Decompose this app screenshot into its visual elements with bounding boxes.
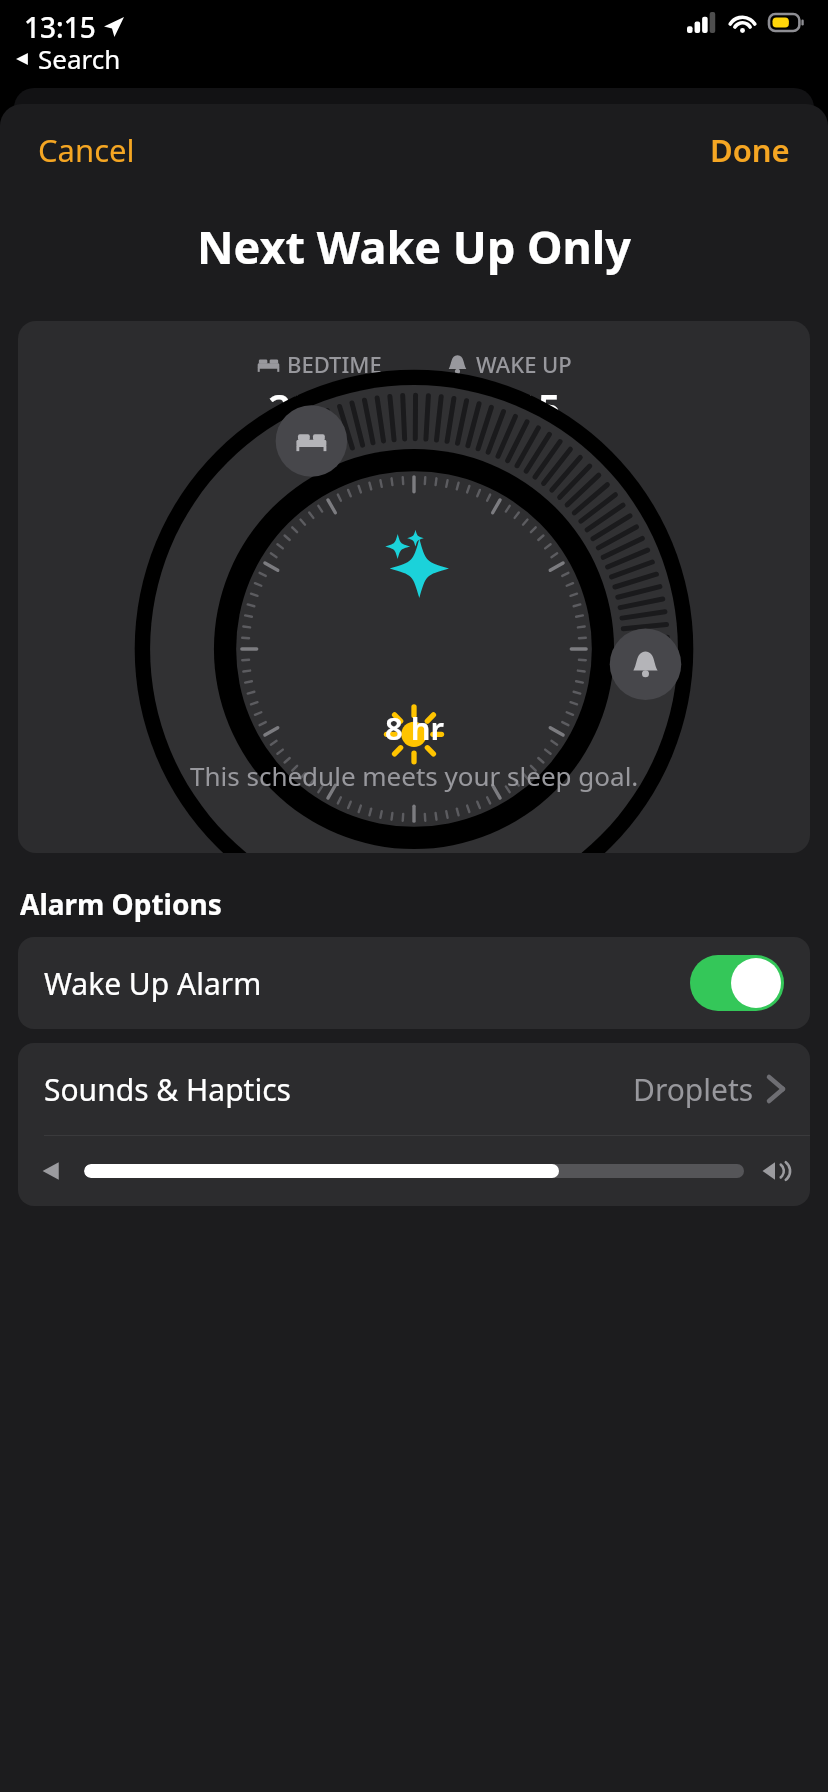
staticText: Sounds & Haptics [44,1069,291,1110]
staticText: Search [38,41,121,76]
button[interactable]: BEDTIME [18,321,810,853]
staticText: Today [286,434,353,467]
staticText: Alarm Options [20,885,222,923]
staticText: 22:15 [268,380,371,434]
staticText: Wake Up Alarm [44,963,262,1004]
staticText: 13:15 [24,8,96,46]
staticText: Done [710,129,790,171]
staticText: Tomorrow [451,434,567,467]
button[interactable]: Volume down [18,1136,810,1206]
staticText: 06:15 [458,380,561,434]
staticText: WAKE UP [476,349,572,379]
staticText: Cancel [38,129,135,171]
other: Volume down [40,1158,66,1184]
button[interactable] [84,1164,744,1178]
other: Volume up [762,1158,788,1184]
button[interactable]: Wake Up Alarm toggle, on [690,955,784,1011]
staticText: BEDTIME [287,349,382,379]
staticText: 8 hr [385,707,445,749]
staticText: Droplets [633,1069,754,1110]
button[interactable]: Search [10,37,127,80]
button[interactable]: Done [672,115,828,185]
button[interactable]: Sounds & Haptics [18,1043,810,1135]
staticText: Next Wake Up Only [0,216,828,277]
button[interactable]: Cancel [0,115,173,185]
staticText: This schedule meets your sleep goal. [190,758,639,793]
button[interactable]: Wake Up Alarm [18,937,810,1029]
other: Sleep schedule dial [129,445,699,853]
